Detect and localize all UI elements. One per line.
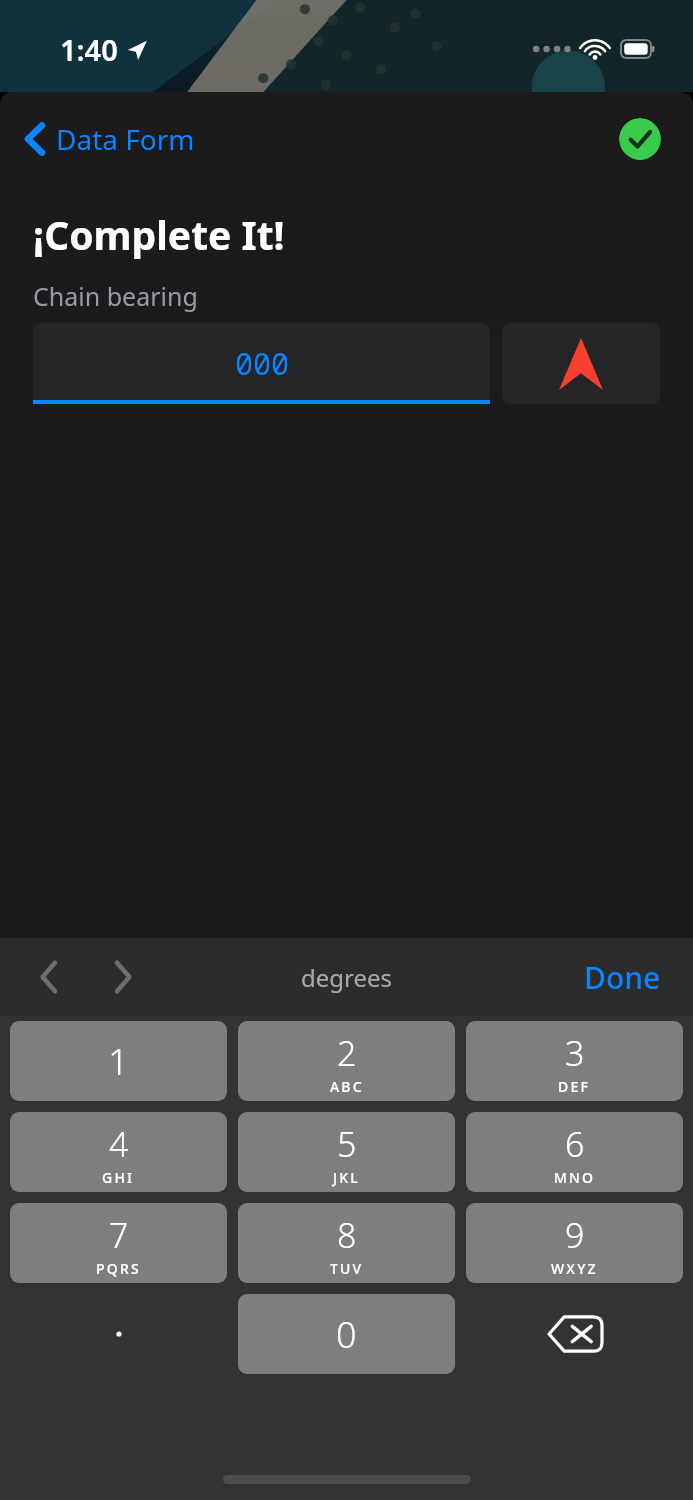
staticText: WXYZ — [551, 1259, 598, 1278]
button[interactable]: 2 — [238, 1021, 455, 1101]
staticText: 1:40 — [60, 30, 118, 69]
staticText: 2 — [337, 1030, 357, 1076]
button[interactable]: Backspace — [466, 1294, 683, 1374]
button[interactable]: 8 — [238, 1203, 455, 1283]
staticText: 0 — [336, 1310, 357, 1359]
staticText: 5 — [337, 1121, 357, 1167]
button[interactable]: Submit form — [619, 118, 661, 160]
staticText: degrees — [301, 961, 393, 994]
button[interactable]: 4 — [10, 1112, 227, 1192]
staticText: 7 — [109, 1212, 129, 1258]
staticText: Chain bearing — [33, 279, 198, 313]
staticText: 8 — [337, 1212, 357, 1258]
button[interactable]: 6 — [466, 1112, 683, 1192]
staticText: JKL — [333, 1168, 360, 1187]
button[interactable]: Done — [576, 951, 669, 1004]
staticText: 1 — [108, 1037, 129, 1086]
button[interactable]: 000 — [33, 323, 490, 404]
button[interactable]: 0 — [238, 1294, 455, 1374]
button[interactable]: 9 — [466, 1203, 683, 1283]
staticText: 6 — [565, 1121, 585, 1167]
staticText: ABC — [330, 1077, 364, 1096]
staticText: ¡Complete It! — [33, 208, 285, 261]
staticText: 000 — [235, 343, 289, 384]
button[interactable]: 5 — [238, 1112, 455, 1192]
staticText: GHI — [102, 1168, 135, 1187]
button[interactable]: Use current heading — [502, 323, 660, 404]
button[interactable]: Data Form — [18, 114, 201, 164]
button[interactable]: 7 — [10, 1203, 227, 1283]
button[interactable]: 3 — [466, 1021, 683, 1101]
staticText: Data Form — [56, 120, 195, 158]
button[interactable]: 1 — [10, 1021, 227, 1101]
button[interactable]: Decimal point — [10, 1294, 227, 1374]
staticText: TUV — [330, 1259, 364, 1278]
staticText: PQRS — [96, 1259, 141, 1278]
staticText: 3 — [565, 1030, 585, 1076]
button[interactable]: Previous field — [26, 952, 72, 1002]
staticText: 9 — [565, 1212, 585, 1258]
staticText: 4 — [109, 1121, 129, 1167]
staticText: MNO — [554, 1168, 596, 1187]
button[interactable]: Next field — [100, 952, 146, 1002]
staticText: DEF — [558, 1077, 591, 1096]
staticText: Done — [584, 957, 661, 998]
